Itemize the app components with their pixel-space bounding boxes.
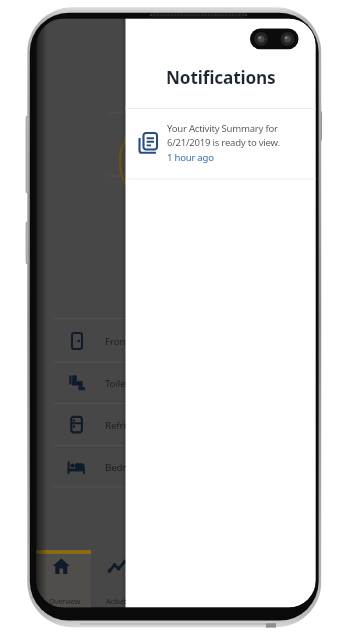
staticText: Toilet [105,377,126,390]
staticText: Refrigerator [105,419,126,432]
staticText: Bedroom [105,461,126,474]
button[interactable]: Overview [37,580,92,608]
button[interactable]: Activity [92,580,126,608]
staticText: 6/21/2019 is ready to view. [167,136,280,149]
staticText: 1 hour ago [167,151,214,164]
button[interactable] [126,109,315,179]
staticText: Front Door [105,335,126,348]
staticText: Your Activity Summary for [167,122,278,135]
staticText: Activity [106,596,126,606]
staticText: Overview [49,596,81,606]
staticText: Notifications [166,66,276,89]
